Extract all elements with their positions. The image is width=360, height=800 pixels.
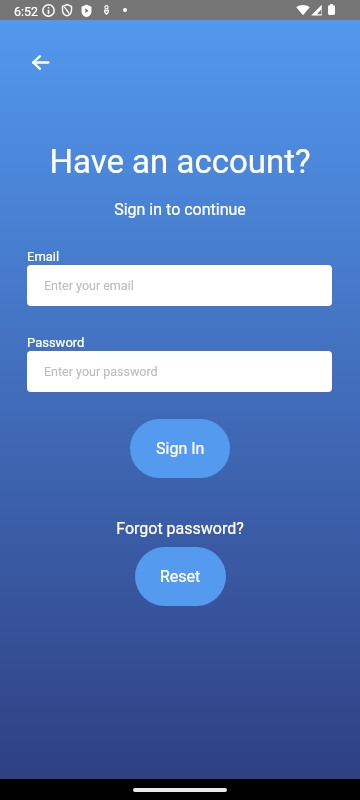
button[interactable]: Back: [22, 44, 59, 81]
staticText: Password: [27, 335, 85, 350]
button[interactable]: Enter your email: [27, 265, 332, 306]
staticText: 6:52: [14, 4, 38, 19]
staticText: Reset: [160, 567, 201, 586]
staticText: Email: [27, 249, 60, 264]
staticText: Enter your email: [44, 278, 134, 293]
staticText: Have an account?: [0, 142, 360, 181]
button[interactable]: Enter your password: [27, 351, 332, 392]
staticText: Forgot password?: [0, 519, 360, 538]
button[interactable]: Reset: [135, 547, 226, 606]
button[interactable]: Sign In: [130, 419, 230, 478]
staticText: Sign In: [156, 439, 205, 458]
staticText: Enter your password: [44, 364, 158, 379]
staticText: Sign in to continue: [0, 200, 360, 219]
